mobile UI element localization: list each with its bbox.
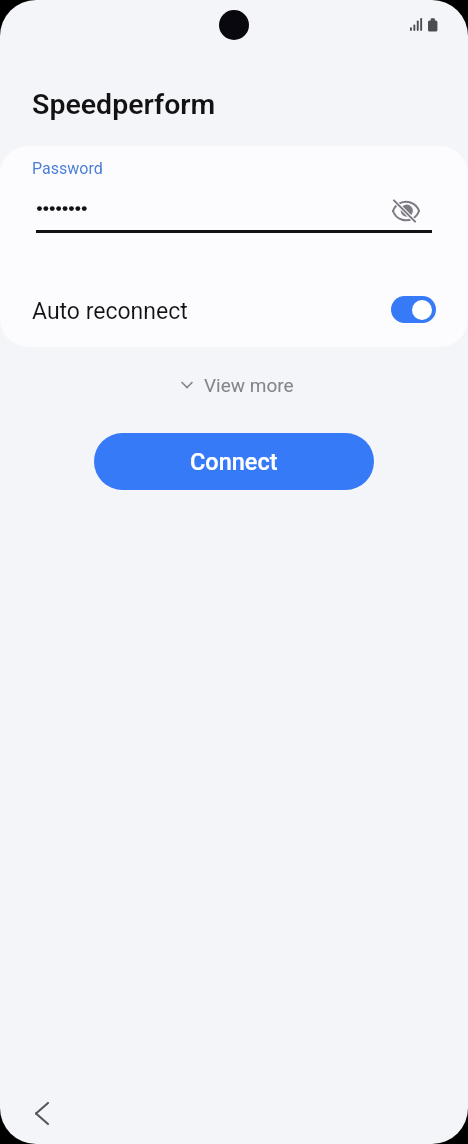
button[interactable]: Back xyxy=(20,1091,64,1135)
staticText: Password xyxy=(32,159,103,178)
button[interactable]: Connect xyxy=(94,433,374,490)
staticText: Auto reconnect xyxy=(32,298,188,325)
button[interactable]: Auto reconnect xyxy=(391,296,436,323)
staticText: View more xyxy=(204,374,294,396)
button[interactable]: Show password xyxy=(387,192,424,229)
staticText: Connect xyxy=(190,448,278,476)
staticText: Speedperform xyxy=(32,88,216,121)
button[interactable]: View more xyxy=(180,372,294,398)
